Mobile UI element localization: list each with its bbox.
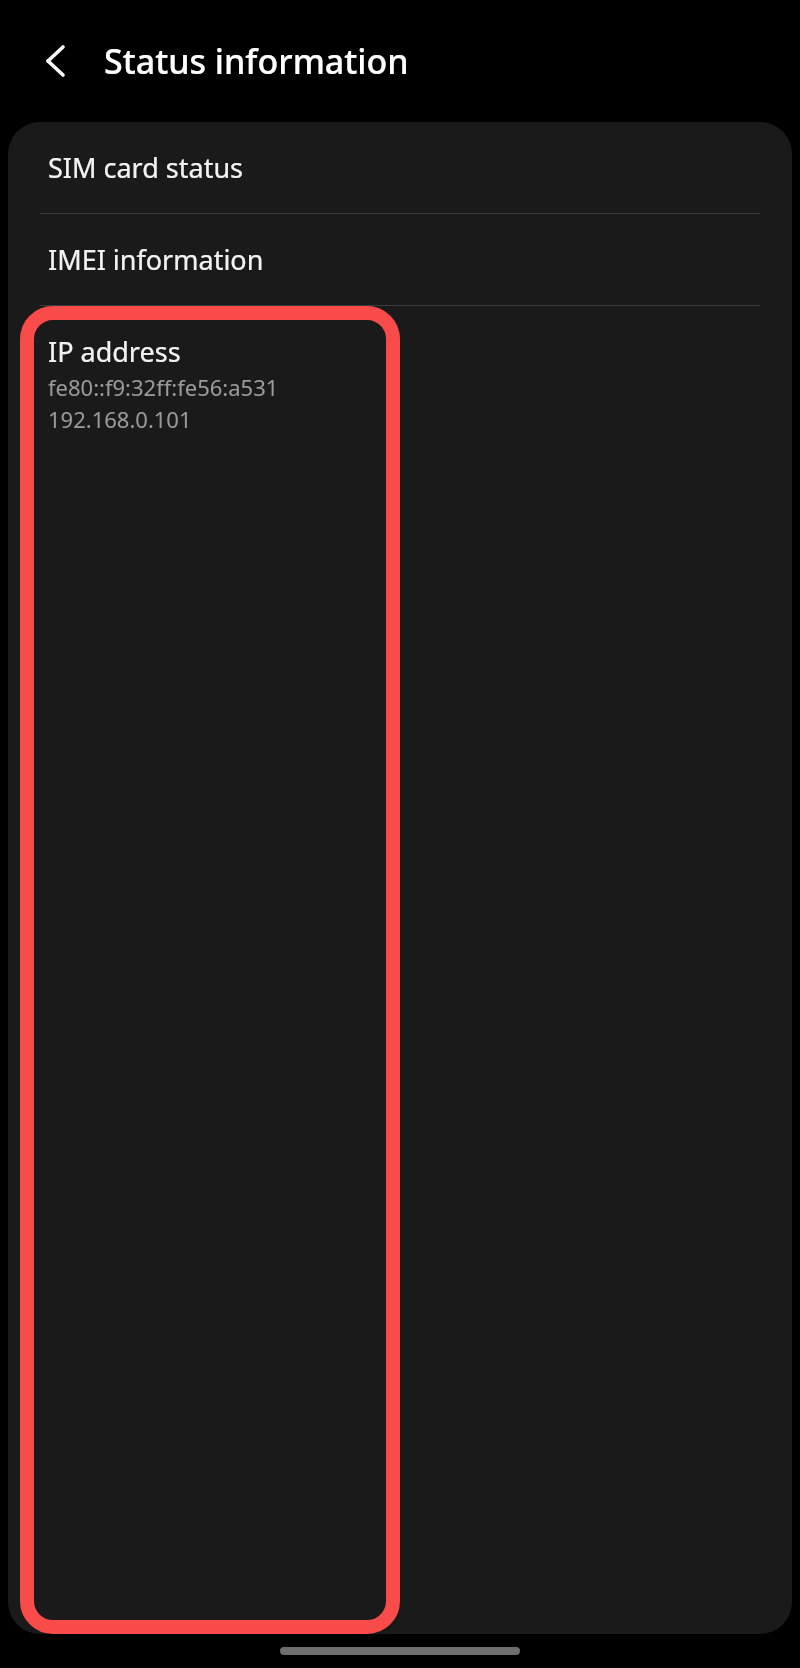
staticText: IP address bbox=[48, 333, 181, 370]
staticText: 192.168.0.101 bbox=[48, 404, 192, 434]
button[interactable]: IMEI information bbox=[8, 214, 792, 305]
staticText: Status information bbox=[104, 38, 409, 84]
staticText: SIM card status bbox=[48, 149, 244, 186]
staticText: IMEI information bbox=[48, 241, 264, 278]
button[interactable]: SIM card status bbox=[8, 122, 792, 213]
button[interactable]: Back bbox=[22, 26, 92, 96]
staticText: fe80::f9:32ff:fe56:a531 bbox=[48, 372, 279, 402]
button[interactable]: IP address bbox=[8, 306, 792, 1634]
